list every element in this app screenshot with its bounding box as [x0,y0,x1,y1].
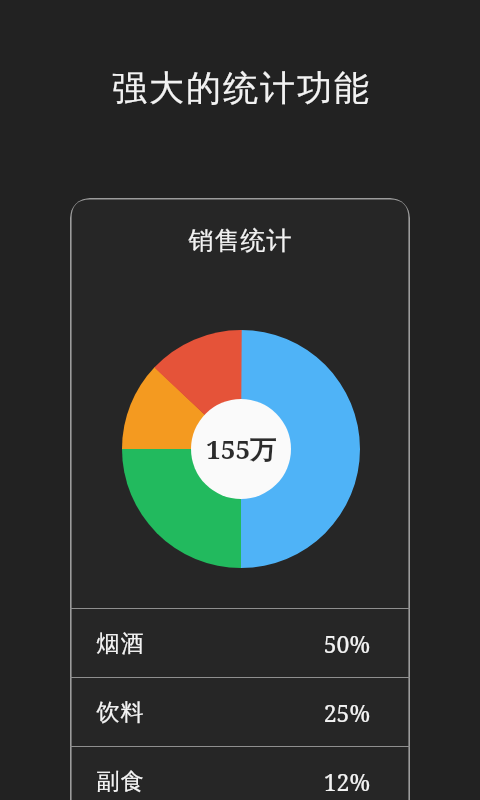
staticText: 饮料 [96,698,144,727]
staticText: 副食 [96,767,144,796]
staticText: 12% [323,766,370,797]
button[interactable]: 副食 [70,747,410,800]
staticText: 155万 [206,431,277,467]
staticText: 销售统计 [188,225,292,256]
button[interactable]: 烟酒 [70,609,410,677]
staticText: 25% [323,697,370,728]
staticText: 强大的统计功能 [111,66,370,110]
other: Sales breakdown donut chart [122,330,360,568]
staticText: 烟酒 [96,629,144,658]
button[interactable]: 饮料 [70,678,410,746]
staticText: 50% [323,628,370,659]
